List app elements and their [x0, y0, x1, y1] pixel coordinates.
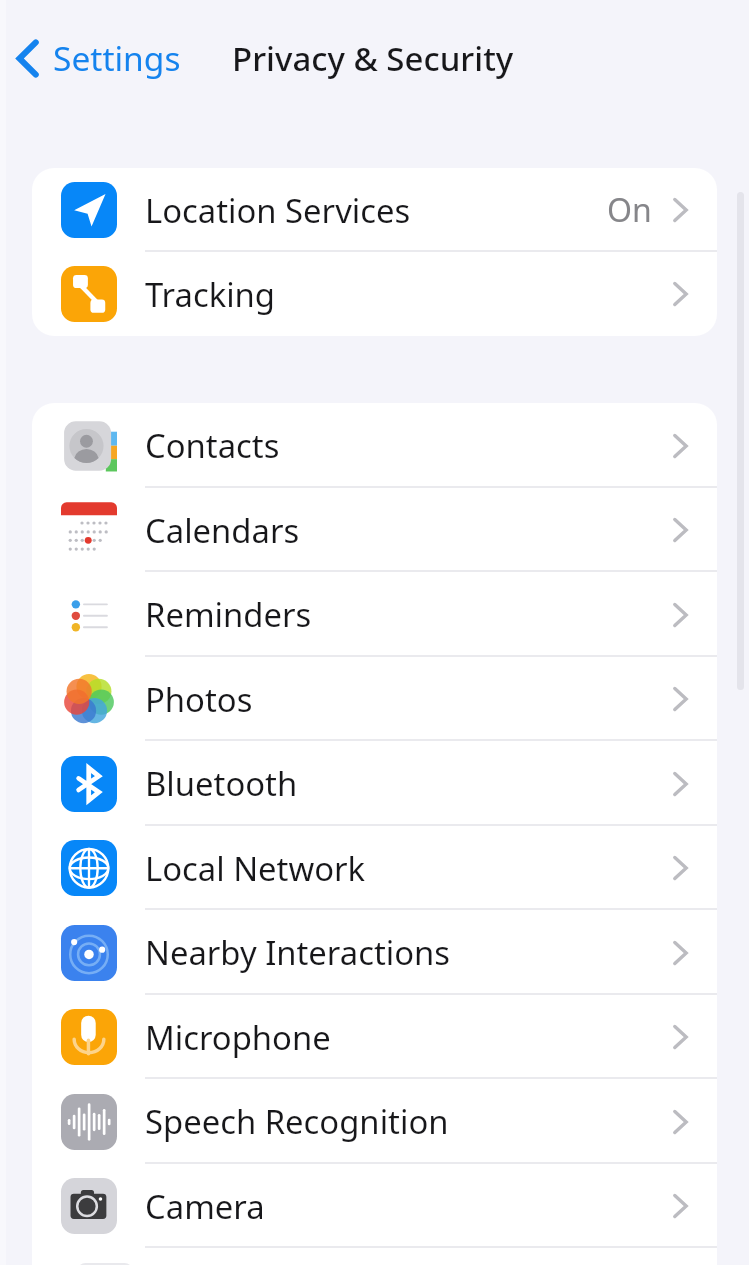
staticText: Photos	[145, 677, 253, 722]
button[interactable]: Photos	[32, 657, 717, 741]
button[interactable]: Reminders	[32, 572, 717, 657]
staticText: Microphone	[145, 1015, 331, 1060]
staticText: Location Services	[145, 188, 411, 233]
button[interactable]: Contacts	[32, 403, 717, 488]
button[interactable]: Camera	[32, 1164, 717, 1248]
button[interactable]: Back to Settings	[0, 25, 195, 91]
staticText: Tracking	[145, 272, 276, 317]
other: Back to Settings	[16, 39, 39, 78]
staticText: On	[607, 188, 652, 232]
staticText: Settings	[53, 35, 181, 81]
button[interactable]: Bluetooth	[32, 741, 717, 826]
staticText: Privacy & Security	[232, 36, 514, 81]
staticText: Calendars	[145, 508, 300, 553]
button[interactable]: Calendars	[32, 488, 717, 572]
button[interactable]: Location Services	[32, 168, 717, 252]
staticText: Camera	[145, 1184, 265, 1229]
staticText: Nearby Interactions	[145, 930, 451, 975]
button[interactable]: Local Network	[32, 826, 717, 910]
button[interactable]: Tracking	[32, 252, 717, 336]
staticText: Reminders	[145, 592, 312, 637]
button[interactable]: Nearby Interactions	[32, 910, 717, 995]
staticText: Bluetooth	[145, 761, 298, 806]
staticText: Contacts	[145, 423, 280, 468]
button[interactable]: Speech Recognition	[32, 1079, 717, 1164]
staticText: Speech Recognition	[145, 1099, 449, 1144]
button[interactable]: Microphone	[32, 995, 717, 1079]
staticText: Local Network	[145, 846, 366, 891]
